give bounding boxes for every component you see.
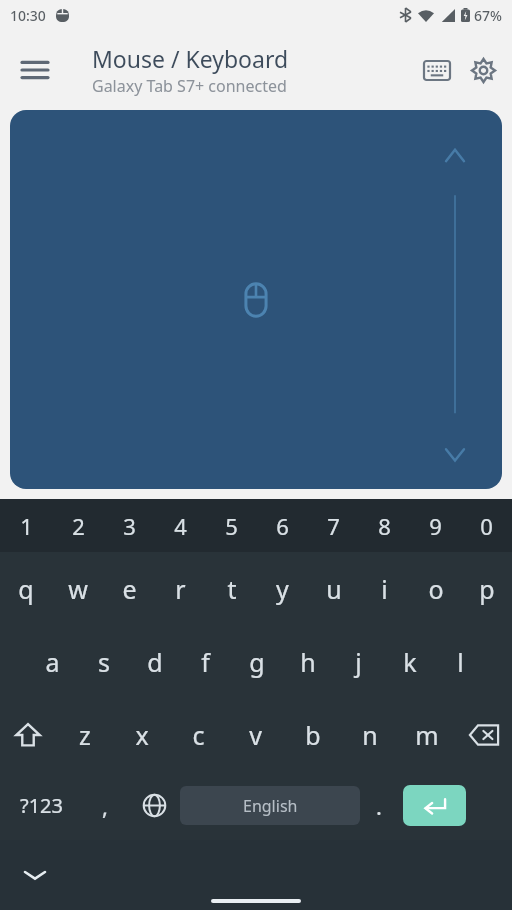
staticText: 9 bbox=[429, 511, 442, 541]
button[interactable]: Settings bbox=[460, 47, 506, 93]
button[interactable]: o bbox=[410, 552, 461, 625]
button[interactable]: b bbox=[284, 698, 341, 771]
button[interactable]: ?123 bbox=[0, 771, 82, 840]
button[interactable]: c bbox=[170, 698, 227, 771]
staticText: x bbox=[135, 718, 149, 752]
button[interactable]: g bbox=[231, 625, 282, 698]
button[interactable]: 7 bbox=[308, 499, 359, 552]
button[interactable]: h bbox=[282, 625, 333, 698]
staticText: 3 bbox=[123, 511, 136, 541]
staticText: 67% bbox=[474, 6, 502, 25]
button[interactable]: e bbox=[104, 552, 155, 625]
staticText: s bbox=[98, 645, 110, 679]
staticText: 5 bbox=[225, 511, 238, 541]
button[interactable]: p bbox=[461, 552, 512, 625]
staticText: h bbox=[300, 645, 316, 679]
staticText: 1 bbox=[20, 511, 33, 541]
button[interactable]: f bbox=[180, 625, 231, 698]
button[interactable]: . bbox=[360, 771, 397, 840]
staticText: g bbox=[249, 645, 265, 679]
staticText: e bbox=[122, 572, 137, 606]
staticText: f bbox=[201, 645, 210, 679]
button[interactable]: m bbox=[398, 698, 455, 771]
staticText: 0 bbox=[480, 511, 493, 541]
button[interactable]: a bbox=[27, 625, 78, 698]
button[interactable]: s bbox=[78, 625, 129, 698]
button[interactable]: w bbox=[52, 552, 104, 625]
staticText: j bbox=[355, 645, 362, 679]
staticText: 2 bbox=[72, 511, 85, 541]
button[interactable]: 5 bbox=[206, 499, 257, 552]
button[interactable]: r bbox=[155, 552, 206, 625]
staticText: ?123 bbox=[20, 792, 63, 819]
button[interactable]: 2 bbox=[52, 499, 104, 552]
staticText: 4 bbox=[174, 511, 187, 541]
button[interactable]: q bbox=[0, 552, 52, 625]
staticText: n bbox=[362, 718, 378, 752]
staticText: 8 bbox=[378, 511, 391, 541]
staticText: t bbox=[227, 572, 237, 606]
button[interactable]: x bbox=[113, 698, 170, 771]
button[interactable]: , bbox=[82, 771, 128, 840]
button[interactable]: u bbox=[308, 552, 359, 625]
staticText: a bbox=[45, 645, 60, 679]
button[interactable]: 8 bbox=[359, 499, 410, 552]
staticText: u bbox=[326, 572, 342, 606]
button[interactable]: j bbox=[333, 625, 384, 698]
button[interactable]: 4 bbox=[155, 499, 206, 552]
staticText: q bbox=[18, 572, 34, 606]
staticText: k bbox=[403, 645, 417, 679]
button[interactable]: 3 bbox=[104, 499, 155, 552]
button[interactable]: 9 bbox=[410, 499, 461, 552]
staticText: d bbox=[147, 645, 163, 679]
staticText: l bbox=[457, 645, 464, 679]
staticText: o bbox=[428, 572, 444, 606]
button[interactable]: y bbox=[257, 552, 308, 625]
button[interactable]: z bbox=[56, 698, 113, 771]
staticText: 10:30 bbox=[10, 6, 46, 25]
button[interactable]: 0 bbox=[461, 499, 512, 552]
button[interactable]: d bbox=[129, 625, 180, 698]
button[interactable]: Touchpad bbox=[10, 110, 502, 489]
button[interactable]: English bbox=[180, 786, 360, 825]
button[interactable]: Hide keyboard bbox=[12, 852, 58, 898]
staticText: Mouse / Keyboard bbox=[92, 43, 289, 74]
staticText: 7 bbox=[327, 511, 340, 541]
staticText: v bbox=[249, 718, 262, 752]
button[interactable]: k bbox=[384, 625, 435, 698]
staticText: m bbox=[415, 718, 439, 752]
staticText: English bbox=[243, 795, 298, 817]
button[interactable]: i bbox=[359, 552, 410, 625]
staticText: , bbox=[102, 791, 108, 821]
button[interactable]: Enter bbox=[403, 785, 466, 826]
button[interactable]: v bbox=[227, 698, 284, 771]
staticText: c bbox=[192, 718, 205, 752]
staticText: 6 bbox=[276, 511, 289, 541]
button[interactable]: Shift bbox=[0, 698, 56, 771]
staticText: z bbox=[79, 718, 91, 752]
staticText: w bbox=[68, 572, 88, 606]
staticText: r bbox=[175, 572, 186, 606]
button[interactable]: t bbox=[206, 552, 257, 625]
staticText: Galaxy Tab S7+ connected bbox=[92, 75, 287, 97]
staticText: y bbox=[276, 572, 289, 606]
button[interactable]: Change language bbox=[128, 771, 180, 840]
button[interactable]: l bbox=[435, 625, 486, 698]
button[interactable]: 6 bbox=[257, 499, 308, 552]
button[interactable]: Backspace bbox=[455, 698, 512, 771]
button[interactable]: Keyboard bbox=[414, 47, 460, 93]
staticText: b bbox=[305, 718, 321, 752]
staticText: . bbox=[376, 791, 382, 821]
staticText: i bbox=[381, 572, 388, 606]
button[interactable]: Menu bbox=[10, 45, 60, 95]
staticText: p bbox=[479, 572, 495, 606]
button[interactable]: 1 bbox=[0, 499, 52, 552]
button[interactable]: n bbox=[341, 698, 398, 771]
